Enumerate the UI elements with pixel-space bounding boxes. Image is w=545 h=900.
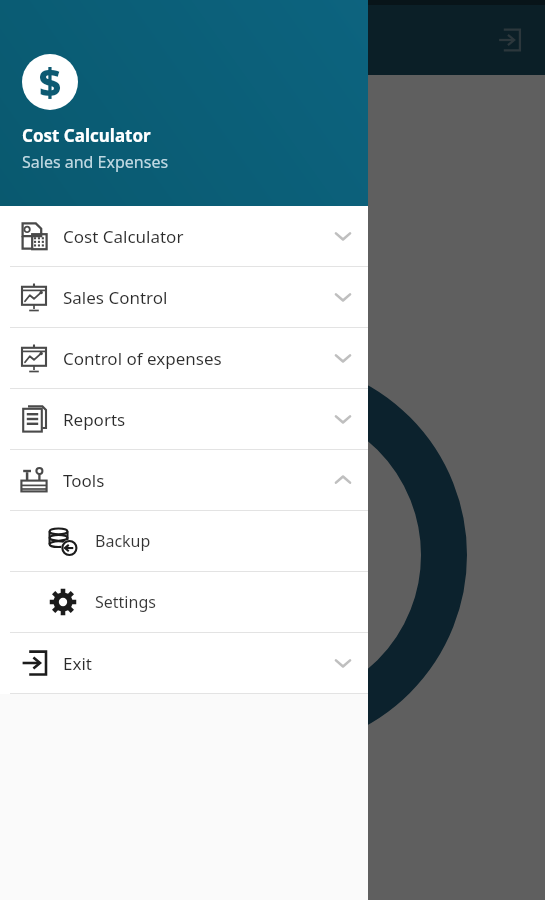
- button[interactable]: Reports: [0, 389, 368, 449]
- staticText: Cost Calculator: [22, 124, 151, 147]
- button[interactable]: Control of expenses: [0, 328, 368, 388]
- button[interactable]: Exit: [0, 633, 368, 693]
- staticText: Tools: [63, 469, 105, 492]
- button[interactable]: Sales Control: [0, 267, 368, 327]
- staticText: Reports: [63, 408, 126, 431]
- staticText: Exit: [63, 652, 92, 675]
- staticText: Backup: [95, 530, 151, 552]
- staticText: Settings: [95, 591, 156, 613]
- button[interactable]: Cost Calculator: [0, 206, 368, 266]
- staticText: Sales and Expenses: [22, 151, 169, 173]
- button[interactable]: Exit: [485, 16, 533, 64]
- staticText: $: [39, 56, 61, 108]
- button[interactable]: Settings: [0, 572, 368, 632]
- staticText: Cost Calculator: [63, 225, 184, 248]
- staticText: Control of expenses: [63, 347, 222, 370]
- staticText: Sales Control: [63, 286, 168, 309]
- button[interactable]: $: [0, 0, 368, 206]
- button[interactable]: Tools: [0, 450, 368, 510]
- button[interactable]: Backup: [0, 511, 368, 571]
